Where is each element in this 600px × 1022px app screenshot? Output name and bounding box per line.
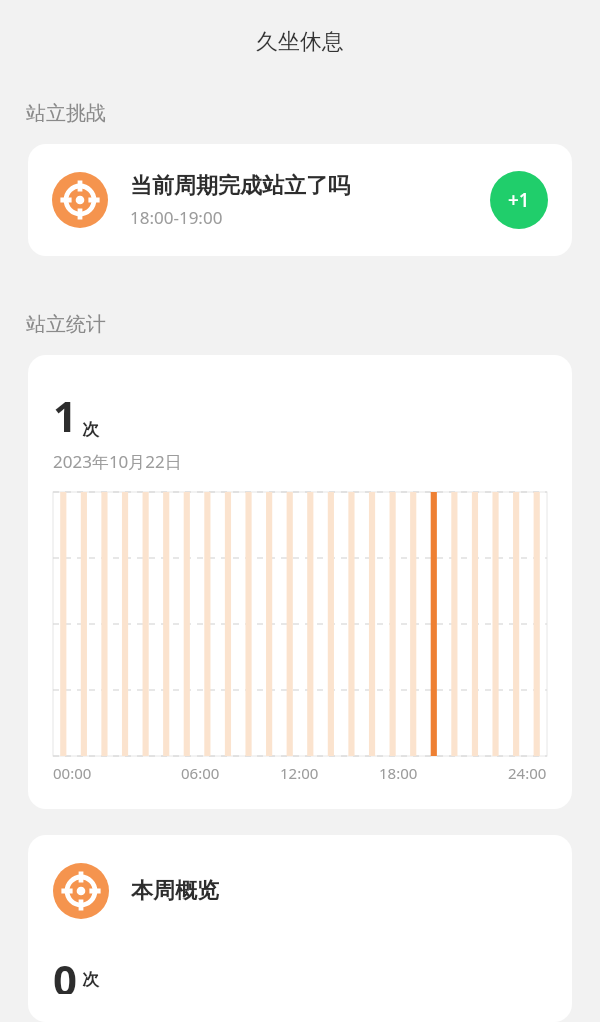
staticText: 24:00 <box>508 763 547 783</box>
staticText: 2023年10月22日 <box>53 450 182 473</box>
staticText: 站立挑战 <box>26 101 106 126</box>
button[interactable]: Add one <box>490 171 548 229</box>
staticText: 久坐休息 <box>256 28 344 56</box>
button[interactable]: Stand goal <box>28 144 572 256</box>
other: Stand goal <box>52 172 108 228</box>
staticText: 00:00 <box>53 763 92 783</box>
staticText: 12:00 <box>280 763 319 783</box>
staticText: 次 <box>82 969 99 990</box>
button[interactable]: Stand goal <box>28 835 572 1022</box>
button[interactable]: 1 <box>28 355 572 809</box>
staticText: 0 <box>53 951 78 994</box>
staticText: 当前周期完成站立了吗 <box>130 172 350 200</box>
staticText: 1 <box>53 387 78 444</box>
staticText: 18:00-19:00 <box>130 206 223 229</box>
staticText: 次 <box>82 419 99 440</box>
staticText: 06:00 <box>181 763 220 783</box>
staticText: +1 <box>508 187 530 213</box>
other: Stand goal <box>53 863 109 919</box>
staticText: 18:00 <box>379 763 418 783</box>
staticText: 站立统计 <box>26 312 106 337</box>
staticText: 本周概览 <box>131 877 219 905</box>
